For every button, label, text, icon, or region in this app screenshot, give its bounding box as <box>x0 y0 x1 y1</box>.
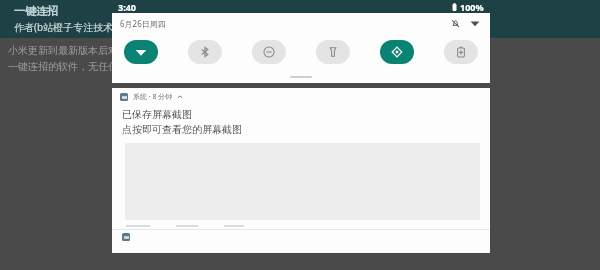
staticText: 点按即可查看您的屏幕截图 <box>122 123 242 136</box>
staticText: 已保存屏幕截图 <box>122 108 192 121</box>
button[interactable]: Bluetooth <box>188 40 222 64</box>
button[interactable]: Battery saver <box>444 40 478 64</box>
button[interactable]: Manage notifications <box>122 233 130 241</box>
staticText: 作者(b站橙子专注技术) <box>14 20 117 34</box>
button[interactable]: Do not disturb <box>252 40 286 64</box>
button[interactable]: Flashlight <box>316 40 350 64</box>
staticText: 小米更新到最新版本后对此软件没有任何功能，只是一个强开 <box>8 44 278 57</box>
button[interactable]: Auto rotate <box>380 40 414 64</box>
staticText: 100% <box>460 1 484 13</box>
staticText: 一键连招的软件，无任何功能。 <box>8 60 148 73</box>
staticText: 3:40 <box>118 1 136 13</box>
staticText: 系统 · 8 分钟 <box>133 92 173 102</box>
staticText: 一键连招 <box>14 4 58 18</box>
staticText: 6月26日周四 <box>120 18 166 29</box>
button[interactable]: Wi-Fi <box>124 40 158 64</box>
button[interactable]: Do not disturb off <box>448 16 462 30</box>
button[interactable]: Wi-Fi settings <box>468 16 482 30</box>
